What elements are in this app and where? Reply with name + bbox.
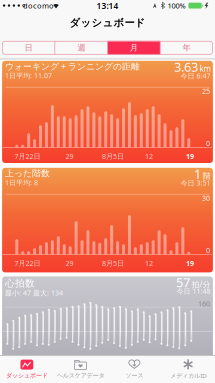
staticText: 今日 11:48 — [177, 286, 211, 296]
button[interactable]: 年 — [160, 41, 213, 55]
button[interactable]: 心拍数 — [2, 276, 213, 383]
staticText: ソース — [125, 372, 143, 379]
staticText: ウォーキング + ランニングの距離 — [5, 60, 140, 72]
staticText: 3.63 — [174, 58, 198, 75]
staticText: 1日平均: 11.07 — [5, 71, 52, 80]
staticText: 160 — [198, 299, 210, 309]
staticText: 今日 3:51 — [181, 178, 211, 188]
staticText: 29 — [65, 151, 73, 161]
staticText: 8月5日 — [102, 258, 124, 268]
staticText: 月 — [130, 43, 138, 53]
staticText: 30 — [202, 193, 210, 203]
staticText: docomo — [23, 1, 54, 11]
staticText: 7月22日 — [15, 151, 41, 161]
staticText: 7月22日 — [15, 258, 41, 268]
staticText: メディカルID — [170, 371, 206, 380]
staticText: 年 — [183, 43, 191, 53]
staticText: 1 — [194, 165, 201, 182]
staticText: 12 — [145, 151, 153, 161]
staticText: 今日 6:47 — [181, 71, 211, 81]
staticText: 100% — [167, 1, 185, 11]
staticText: 8月5日 — [102, 151, 124, 161]
staticText: 最小: 47 最大: 134 — [5, 288, 63, 298]
button[interactable]: ダッシュボード — [0, 355, 54, 382]
staticText: 週 — [77, 43, 85, 53]
button[interactable]: メディカルID — [161, 355, 215, 382]
staticText: 日 — [24, 43, 32, 53]
staticText: 12 — [145, 258, 153, 268]
button[interactable]: 月 — [107, 41, 160, 55]
staticText: 25 — [202, 86, 210, 96]
button[interactable]: 上った階数 — [2, 168, 213, 272]
staticText: 19 — [186, 258, 194, 268]
staticText: 0 — [206, 245, 210, 255]
button[interactable]: ソース — [107, 355, 161, 382]
staticText: 階 — [203, 171, 211, 181]
staticText: ヘルスケアデータ — [57, 372, 105, 379]
staticText: 1日平均: 8 — [5, 178, 38, 187]
button[interactable]: ウォーキング + ランニングの距離 — [2, 61, 213, 163]
staticText: 29 — [65, 258, 73, 268]
button[interactable]: 日 — [2, 41, 55, 55]
staticText: 拍/分 — [192, 279, 211, 290]
staticText: 19 — [186, 151, 194, 161]
staticText: ダッシュボード — [69, 16, 145, 29]
staticText: 心拍数 — [5, 277, 35, 289]
staticText: 上った階数 — [5, 168, 50, 179]
staticText: ダッシュボード — [6, 372, 48, 379]
button[interactable]: ヘルスケアデータ — [54, 355, 108, 382]
staticText: 57 — [176, 274, 190, 291]
staticText: 0 — [206, 138, 210, 148]
staticText: km — [200, 63, 211, 74]
staticText: 13:14 — [96, 0, 118, 11]
button[interactable]: 週 — [55, 41, 107, 55]
